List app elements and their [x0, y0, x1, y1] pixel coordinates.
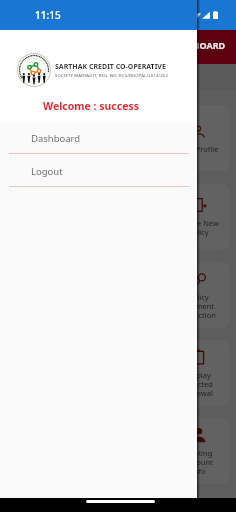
- button[interactable]: Create New Policy: [6, 184, 230, 250]
- staticText: Logout: [31, 165, 63, 178]
- staticText: SOCIETY MARYADIT, REG. NO. RCS/BHOPAL/20…: [55, 72, 169, 78]
- button[interactable]: View Profile: [6, 105, 230, 171]
- button[interactable]: Existing Account Info: [6, 418, 230, 484]
- staticText: Policy Payment Collection: [181, 292, 216, 320]
- button[interactable]: Dashboard: [0, 121, 197, 154]
- button[interactable]: Logout: [0, 154, 197, 187]
- button[interactable]: Policy Payment Collection: [6, 262, 230, 328]
- staticText: Create New Policy: [178, 218, 219, 237]
- staticText: View Profile: [177, 144, 219, 154]
- staticText: Welcome : success: [43, 99, 139, 113]
- staticText: 11:15: [35, 8, 61, 22]
- staticText: SARTHAK CREDIT CO-OPERATIVE: [55, 62, 166, 72]
- staticText: Existing Account Info: [184, 448, 213, 476]
- staticText: Dashboard: [31, 132, 81, 145]
- button[interactable]: Display Selected Renewal: [6, 340, 230, 406]
- staticText: Display Selected Renewal: [183, 370, 213, 398]
- staticText: DASHBOARD: [169, 39, 226, 51]
- staticText: 11:15: [35, 8, 61, 22]
